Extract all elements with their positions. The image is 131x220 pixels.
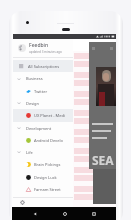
button[interactable]: UX Planet - Medi [13,109,73,122]
staticText: All Subscriptions [28,64,60,69]
button[interactable] [74,167,115,184]
staticText: Life [26,150,33,155]
button[interactable]: Design Luck [13,171,73,183]
staticText: Twitter [34,89,48,94]
staticText: Design [26,101,40,106]
button[interactable]: Feedbin [13,39,73,57]
button[interactable]: Development [13,122,73,134]
button[interactable]: Farnam Street [13,183,73,195]
button[interactable]: Back [28,207,41,220]
button[interactable] [74,186,115,203]
staticText: Feedbin [29,42,49,49]
other: Settings [20,200,25,205]
staticText: SEA [92,152,114,168]
button[interactable]: Home [58,207,71,220]
button[interactable]: All Subscriptions [13,60,73,72]
button[interactable] [74,53,115,70]
button[interactable]: Life [13,146,73,158]
button[interactable]: Twitter [13,85,73,97]
staticText: Farnam Street [34,187,61,192]
button[interactable]: Settings [13,198,73,207]
button[interactable] [74,91,115,108]
staticText: Brain Pickings [34,162,61,167]
button[interactable] [74,110,115,127]
button[interactable]: Android Develo [13,134,73,146]
staticText: Android Develo [34,138,63,143]
button[interactable]: Design [13,97,73,109]
staticText: Design Luck [34,175,57,180]
staticText: Development [26,126,52,131]
button[interactable] [74,72,115,89]
button[interactable] [74,148,115,165]
button[interactable]: Business [13,72,73,85]
button[interactable]: Recent apps [87,207,100,220]
button[interactable]: Brain Pickings [13,158,73,171]
staticText: updated 3 minutes ago [29,50,62,54]
button[interactable] [74,129,115,146]
staticText: Business [26,76,43,81]
staticText: UX Planet - Medi [34,113,65,118]
